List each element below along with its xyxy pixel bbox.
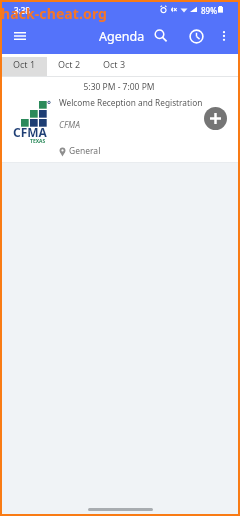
staticText: Welcome Reception and Registration	[59, 97, 203, 108]
staticText: Agenda	[99, 28, 145, 45]
staticText: CFMA	[59, 119, 80, 131]
staticText: Oct 1	[13, 58, 36, 70]
button[interactable]: Add to my agenda	[204, 107, 227, 130]
staticText: hack-cheat.org	[1, 4, 108, 23]
staticText: TEXAS	[30, 138, 46, 145]
staticText: 5:30 PM - 7:00 PM	[83, 81, 155, 93]
button[interactable]: Schedule	[183, 23, 209, 49]
staticText: Oct 2	[58, 58, 81, 70]
staticText: 3:38	[14, 5, 30, 16]
button[interactable]: More options	[212, 24, 236, 48]
staticText: 89%	[201, 5, 217, 16]
button[interactable]: CFMA	[2, 77, 238, 162]
button[interactable]: Search	[149, 24, 173, 48]
button[interactable]: Oct 2	[47, 54, 92, 76]
button[interactable]: Oct 1	[2, 54, 47, 76]
staticText: General	[69, 145, 101, 157]
button[interactable]: Open navigation menu	[7, 23, 33, 49]
staticText: CFMA	[13, 124, 47, 140]
button[interactable]: Oct 3	[92, 54, 137, 76]
staticText: Oct 3	[103, 58, 126, 70]
